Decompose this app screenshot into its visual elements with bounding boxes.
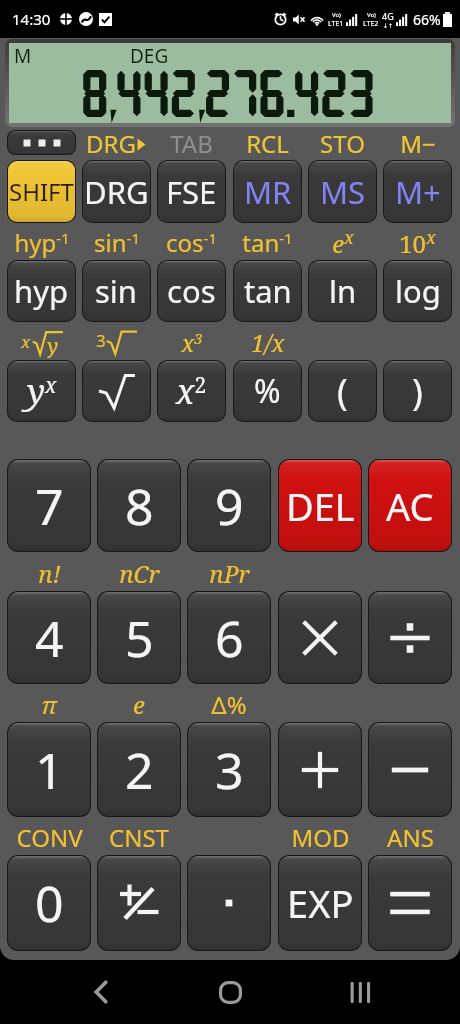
staticText: AC xyxy=(386,480,434,532)
staticText: LTE1 xyxy=(328,19,344,29)
button[interactable]: Back xyxy=(71,960,131,1024)
button[interactable]: hyp xyxy=(7,260,76,322)
staticText: 14:30 xyxy=(12,9,51,29)
staticText: hyp-1 xyxy=(14,226,70,259)
staticText: ↓↑ xyxy=(383,22,394,29)
staticText: n! xyxy=(38,557,61,590)
button[interactable]: 9 xyxy=(187,459,271,552)
button[interactable]: EXP xyxy=(278,855,362,951)
staticText: ex xyxy=(332,225,354,259)
button[interactable]: SHIFT xyxy=(7,160,76,223)
staticText: 8 xyxy=(125,472,154,540)
staticText: 3 xyxy=(96,329,106,352)
button[interactable]: sin xyxy=(82,260,151,322)
staticText: 10x xyxy=(399,225,436,259)
staticText: x3 xyxy=(181,326,203,359)
button[interactable]: 5 xyxy=(97,591,181,684)
button[interactable]: 2 xyxy=(97,722,181,817)
button[interactable]: Minus xyxy=(368,722,452,817)
staticText: Δ% xyxy=(211,688,247,721)
button[interactable]: More options xyxy=(7,130,76,155)
staticText: sin xyxy=(95,270,138,312)
button[interactable]: DEL xyxy=(278,459,362,552)
staticText: M xyxy=(14,43,32,69)
button[interactable]: ) xyxy=(383,360,452,422)
button[interactable]: % xyxy=(233,360,302,422)
staticText: 1/x xyxy=(251,326,285,359)
button[interactable]: Decimal point xyxy=(187,855,271,951)
button[interactable]: MR xyxy=(233,160,302,223)
staticText: cos xyxy=(167,270,216,312)
staticText: Vo) xyxy=(332,11,341,19)
staticText: yx xyxy=(27,368,57,414)
staticText: MR xyxy=(244,171,292,213)
staticText: MOD xyxy=(291,821,350,854)
staticText: ANS xyxy=(387,821,434,854)
button[interactable]: log xyxy=(383,260,452,322)
staticText: hyp xyxy=(14,270,69,312)
button[interactable]: 8 xyxy=(97,459,181,552)
staticText: nCr xyxy=(119,557,160,590)
button[interactable]: Multiply xyxy=(278,591,362,684)
button[interactable]: ( xyxy=(308,360,377,422)
staticText: CONV xyxy=(16,821,83,854)
button[interactable]: MS xyxy=(308,160,377,223)
staticText: 6 xyxy=(215,604,244,672)
staticText: 66% xyxy=(413,10,441,29)
staticText: 5 xyxy=(125,604,154,672)
button[interactable]: Divide xyxy=(368,591,452,684)
button[interactable]: y to the x xyxy=(7,360,76,422)
button[interactable]: 6 xyxy=(187,591,271,684)
button[interactable]: cos xyxy=(157,260,226,322)
staticText: M− xyxy=(400,127,436,160)
staticText: M+ xyxy=(395,171,441,213)
staticText: π xyxy=(41,688,57,721)
button[interactable]: DRG xyxy=(82,160,151,223)
button[interactable]: Recent apps xyxy=(329,960,389,1024)
staticText: 4G xyxy=(382,10,394,22)
staticText: 3 xyxy=(215,736,244,804)
staticText: cos-1 xyxy=(166,226,217,259)
button[interactable]: Home xyxy=(200,960,260,1024)
staticText: sin-1 xyxy=(94,226,140,259)
staticText: y xyxy=(47,332,59,358)
staticText: 4 xyxy=(35,604,64,672)
staticText: nPr xyxy=(209,557,250,590)
staticText: 0 xyxy=(35,869,64,937)
staticText: ( xyxy=(337,367,348,416)
staticText: e xyxy=(133,688,145,721)
button[interactable]: 0 xyxy=(7,855,91,951)
staticText: tan xyxy=(244,270,292,312)
staticText: 1 xyxy=(35,736,64,804)
staticText: ln xyxy=(329,270,357,312)
staticText: SHIFT xyxy=(9,175,74,208)
staticText: LTE2 xyxy=(363,19,379,29)
button[interactable]: AC xyxy=(368,459,452,552)
staticText: TAB xyxy=(170,127,213,160)
button[interactable]: ln xyxy=(308,260,377,322)
button[interactable]: Plus minus sign xyxy=(97,855,181,951)
staticText: EXP xyxy=(287,877,354,929)
button[interactable]: Equals xyxy=(368,855,452,951)
button[interactable]: tan xyxy=(233,260,302,322)
staticText: ) xyxy=(412,367,423,416)
button[interactable]: 7 xyxy=(7,459,91,552)
staticText: MS xyxy=(320,171,366,213)
staticText: log xyxy=(395,270,441,312)
button[interactable]: M+ xyxy=(383,160,452,223)
staticText: RCL xyxy=(246,127,289,160)
button[interactable]: 4 xyxy=(7,591,91,684)
staticText: tan-1 xyxy=(242,226,293,259)
staticText: x2 xyxy=(176,368,207,414)
button[interactable]: Plus xyxy=(278,722,362,817)
staticText: DEL xyxy=(286,480,355,532)
staticText: STO xyxy=(320,127,365,160)
button[interactable]: square root xyxy=(82,360,151,422)
staticText: 2 xyxy=(125,736,154,804)
staticText: FSE xyxy=(166,171,217,213)
staticText: Vo) xyxy=(367,11,376,19)
button[interactable]: 1 xyxy=(7,722,91,817)
button[interactable]: x squared xyxy=(157,360,226,422)
button[interactable]: FSE xyxy=(157,160,226,223)
button[interactable]: 3 xyxy=(187,722,271,817)
